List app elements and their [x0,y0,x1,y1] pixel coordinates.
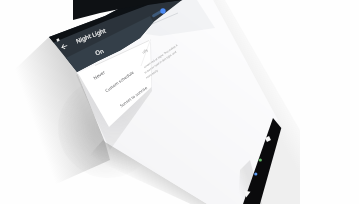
button[interactable] [98,72,140,96]
button[interactable] [261,131,275,146]
button[interactable] [249,167,262,181]
button[interactable] [239,186,254,201]
button[interactable] [88,42,110,56]
button[interactable] [148,4,170,19]
button[interactable] [86,64,112,82]
button[interactable] [112,86,154,110]
button[interactable] [57,39,73,54]
